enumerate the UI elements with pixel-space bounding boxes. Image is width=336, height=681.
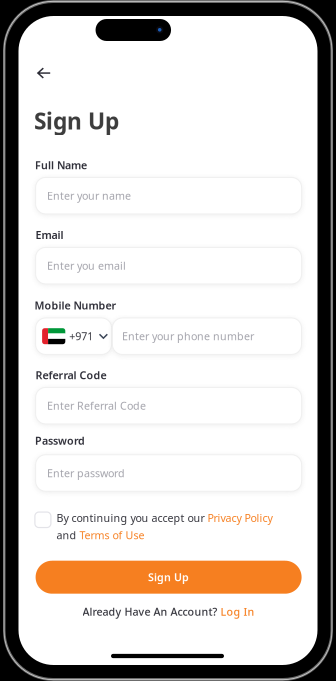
staticText: Enter your name [47,189,131,203]
staticText: Sign Up [34,105,119,136]
staticText: Already Have An Account? [82,604,220,619]
staticText: Terms of Use [79,528,144,542]
button[interactable]: Sign Up [36,561,302,594]
staticText: Enter Referral Code [47,399,146,413]
button[interactable]: Enter your phone number [112,318,301,354]
staticText: Email [36,228,64,242]
button[interactable]: Accept terms and conditions [35,512,51,527]
staticText: Enter your phone number [122,329,254,343]
staticText: Password [35,433,85,448]
button[interactable]: Back [29,60,59,86]
button[interactable]: Enter you email [36,247,302,284]
staticText: Privacy Policy [207,511,272,525]
staticText: and [56,528,79,542]
staticText: Enter you email [47,259,126,273]
staticText: Referral Code [36,368,107,382]
button[interactable]: Enter password [36,455,302,491]
staticText: +971 [69,329,93,343]
button[interactable]: Enter your name [36,177,302,214]
button[interactable]: Country code +971 [36,318,112,354]
staticText: Mobile Number [35,298,117,312]
staticText: Sign Up [148,570,189,584]
button[interactable]: Already Have An Account? [82,603,254,619]
staticText: Log In [220,604,254,619]
button[interactable]: Enter Referral Code [36,387,302,424]
staticText: Full Name [35,158,87,172]
staticText: Enter password [47,466,125,480]
staticText: By continuing you accept our [56,511,207,525]
